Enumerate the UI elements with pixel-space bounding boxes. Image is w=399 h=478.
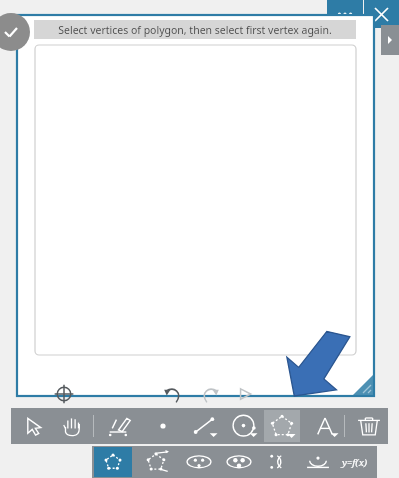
staticText: Select vertices of polygon, then select …: [58, 23, 332, 37]
button[interactable]: Function: [335, 446, 375, 478]
button[interactable]: Play: [232, 381, 258, 407]
button[interactable]: Line: [185, 410, 223, 442]
button[interactable]: Text: [306, 410, 344, 442]
button[interactable]: Redo: [197, 381, 223, 407]
button[interactable]: [35, 45, 356, 355]
button[interactable]: Circle: [225, 410, 263, 442]
button[interactable]: Close: [364, 0, 399, 28]
button[interactable]: Center view: [51, 381, 77, 407]
button[interactable]: Arc: [260, 447, 298, 477]
button[interactable]: Expand panel: [381, 25, 399, 55]
staticText: y=f(x): [342, 456, 368, 469]
button[interactable]: Vector polygon: [220, 447, 258, 477]
button[interactable]: Undo: [160, 381, 186, 407]
button[interactable]: Draw: [99, 410, 137, 442]
button[interactable]: Polygon: [94, 447, 132, 477]
button[interactable]: Semicircle: [299, 447, 337, 477]
button[interactable]: More options: [327, 0, 363, 28]
button[interactable]: Point: [144, 410, 182, 442]
button[interactable]: Confirm: [0, 13, 30, 51]
button[interactable]: Rigid polygon: [180, 447, 218, 477]
button[interactable]: Regular polygon: [137, 447, 175, 477]
button[interactable]: Polygon: [264, 410, 300, 442]
button[interactable]: Delete: [350, 410, 388, 442]
button[interactable]: Pan: [53, 410, 91, 442]
button[interactable]: Select: [14, 410, 52, 442]
